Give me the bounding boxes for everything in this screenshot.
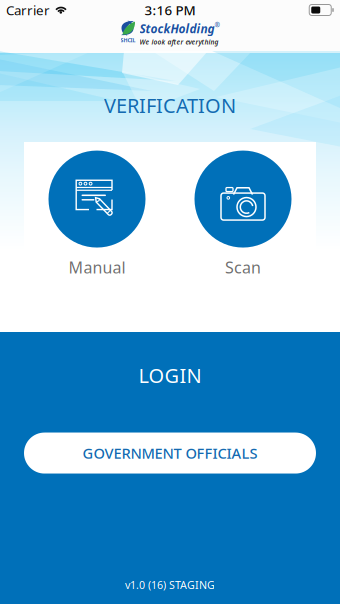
button[interactable]: Manual (48, 151, 145, 278)
button[interactable]: GOVERNMENT OFFICIALS (24, 433, 316, 474)
staticText: GOVERNMENT OFFICIALS (82, 443, 257, 463)
staticText: ® (214, 21, 220, 29)
staticText: v1.0 (16) STAGING (125, 578, 215, 592)
staticText: We look after everything (139, 37, 218, 46)
staticText: 3:16 PM (144, 1, 195, 19)
button[interactable]: Scan (194, 151, 291, 278)
staticText: Manual (68, 257, 125, 278)
staticText: StockHolding (139, 21, 214, 36)
staticText: Carrier (6, 1, 50, 19)
staticText: Scan (225, 257, 261, 278)
staticText: LOGIN (138, 362, 201, 389)
staticText: SHCIL (120, 37, 135, 44)
staticText: VERIFICATION (104, 92, 236, 119)
